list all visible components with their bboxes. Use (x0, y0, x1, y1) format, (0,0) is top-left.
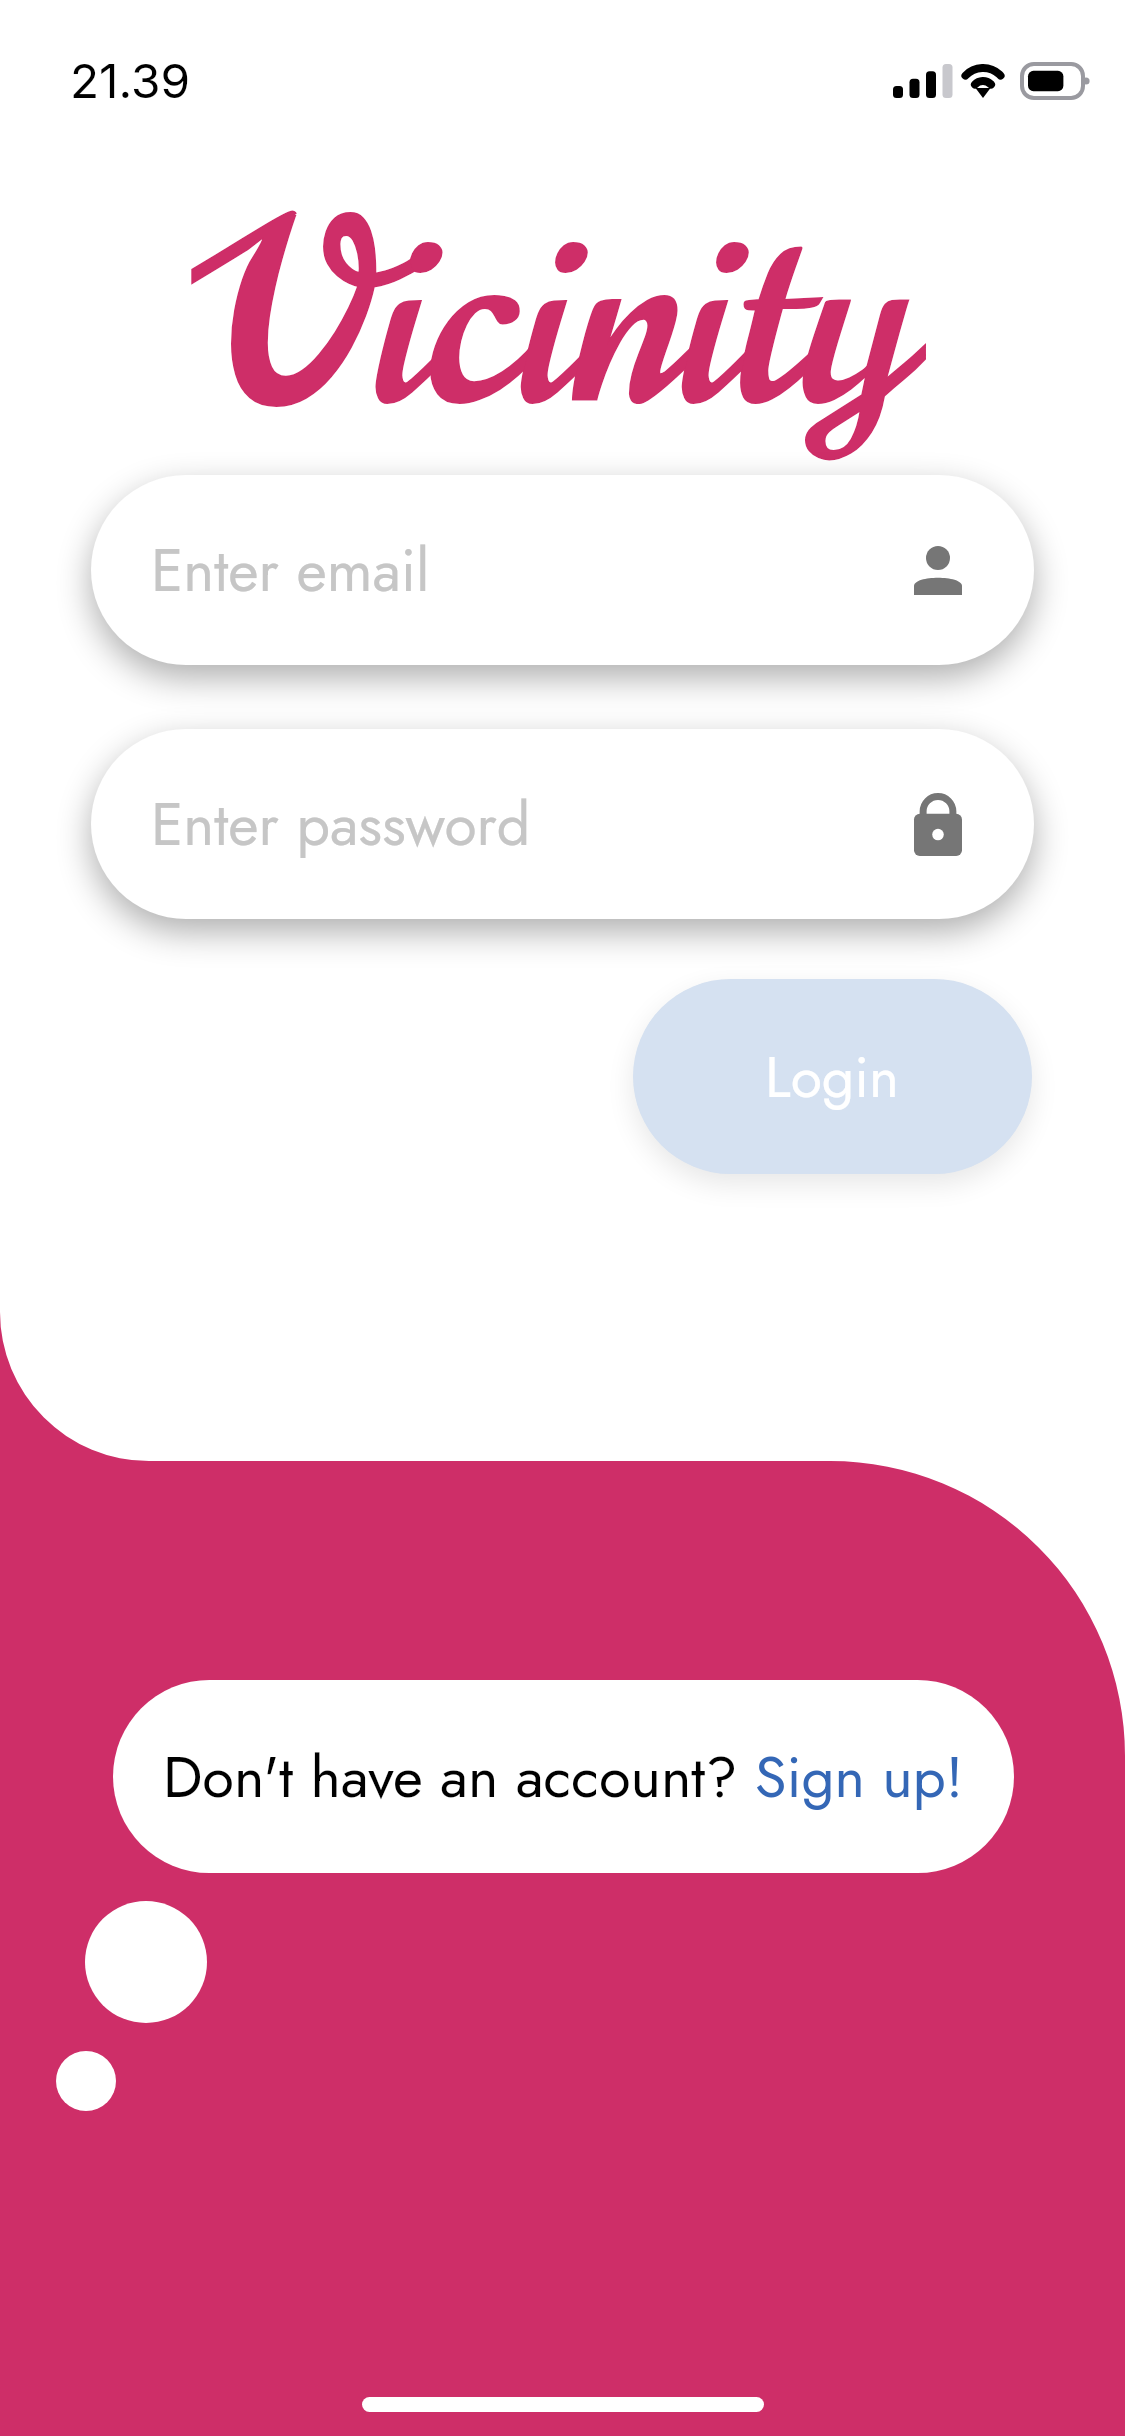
button[interactable]: Login (633, 979, 1032, 1174)
button[interactable]: Don't have an account? Sign up! (113, 1680, 1014, 1873)
staticText: Enter email (151, 528, 430, 613)
staticText: Vicinity (0, 141, 1118, 496)
staticText: Vicinity (0, 141, 1118, 496)
button[interactable]: Password field (91, 729, 1034, 919)
staticText: 21.39 (70, 52, 190, 110)
staticText: Don't have an account? Sign up! (163, 1735, 964, 1819)
staticText: Login (765, 1036, 900, 1118)
button[interactable]: Email address field (91, 475, 1034, 665)
staticText: Enter password (151, 782, 531, 867)
